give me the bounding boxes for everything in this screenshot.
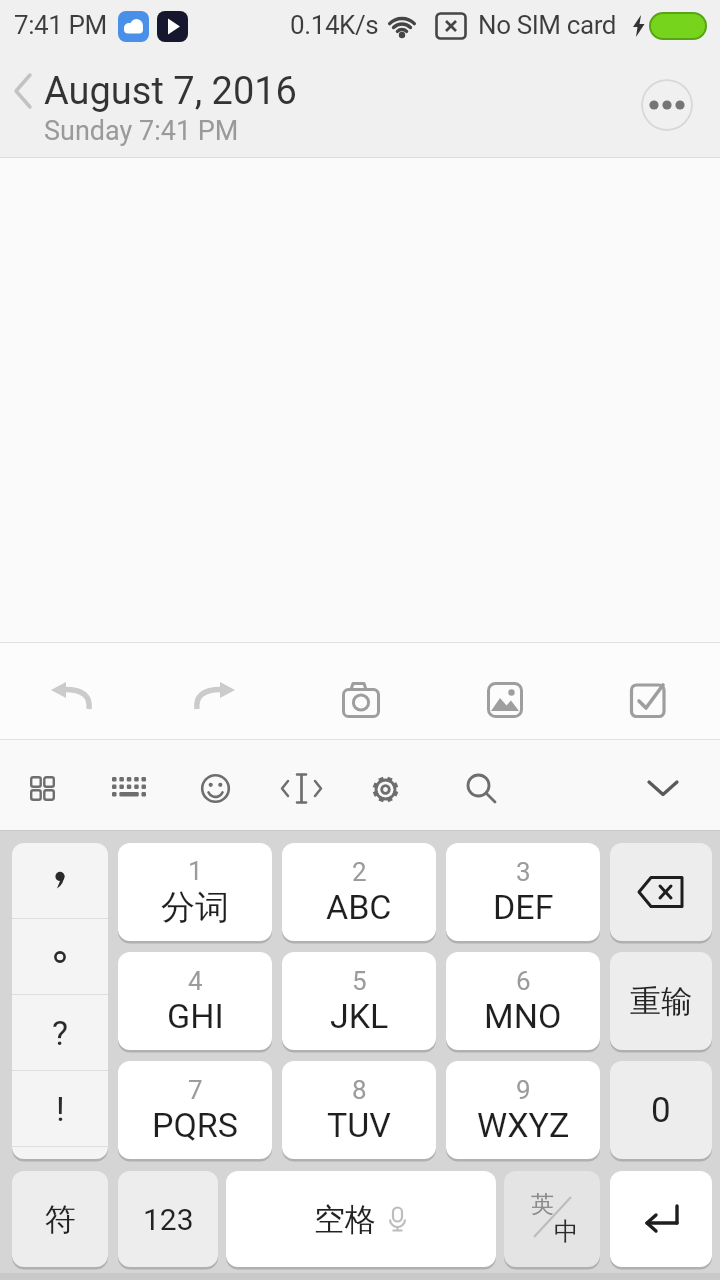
staticText: WXYZ (477, 1105, 570, 1145)
staticText: ABC (326, 887, 392, 927)
button[interactable] (610, 843, 712, 941)
button[interactable]: 9 (446, 1061, 600, 1159)
staticText: ! (56, 1089, 65, 1129)
button[interactable]: 1 (118, 843, 272, 941)
staticText: 0 (651, 1090, 671, 1131)
button[interactable]: 7 (118, 1061, 272, 1159)
button[interactable]: 0 (610, 1061, 712, 1159)
button[interactable] (12, 919, 108, 994)
staticText: 8 (352, 1075, 367, 1105)
button[interactable]: 6 (446, 952, 600, 1050)
staticText: 7 (188, 1075, 203, 1105)
staticText: JKL (330, 996, 389, 1036)
button[interactable] (641, 79, 693, 131)
button[interactable]: ? (12, 995, 108, 1070)
staticText: 空格 (314, 1200, 376, 1239)
staticText: 重输 (630, 982, 692, 1021)
staticText: 6 (516, 966, 531, 996)
staticText: 符 (45, 1200, 76, 1239)
button[interactable]: 3 (446, 843, 600, 941)
staticText: 2 (352, 857, 367, 887)
button[interactable]: 4 (118, 952, 272, 1050)
staticText: 中 (554, 1216, 579, 1247)
staticText: 英 (531, 1190, 554, 1219)
button[interactable] (634, 765, 690, 811)
button[interactable] (362, 763, 410, 811)
staticText: 5 (352, 966, 367, 996)
button[interactable] (334, 676, 388, 720)
staticText: 3 (516, 857, 531, 887)
button[interactable] (192, 763, 240, 811)
staticText: August 7, 2016 (44, 69, 297, 114)
button[interactable]: 2 (282, 843, 436, 941)
button[interactable] (610, 1171, 712, 1267)
staticText: TUV (327, 1105, 391, 1145)
staticText: Sunday 7:41 PM (44, 115, 239, 147)
button[interactable]: 重输 (610, 952, 712, 1050)
button[interactable] (42, 674, 100, 716)
button[interactable] (620, 676, 676, 720)
staticText: 7:41 PM (14, 10, 107, 40)
button[interactable]: 英 (504, 1171, 600, 1267)
staticText: PQRS (152, 1105, 238, 1145)
staticText: ? (52, 1013, 69, 1053)
button[interactable] (452, 763, 502, 811)
staticText: MNO (484, 996, 562, 1036)
staticText: 0.14K/s (290, 10, 379, 40)
staticText: GHI (167, 996, 224, 1036)
button[interactable] (4, 69, 44, 115)
button[interactable]: ! (12, 1071, 108, 1146)
button[interactable] (276, 763, 326, 811)
button[interactable] (104, 763, 154, 811)
button[interactable]: 符 (12, 1171, 108, 1267)
button[interactable] (12, 843, 108, 918)
staticText: 9 (516, 1075, 531, 1105)
staticText: 1 (188, 856, 203, 886)
button[interactable]: 5 (282, 952, 436, 1050)
staticText: DEF (493, 887, 554, 927)
staticText: 123 (143, 1202, 194, 1237)
staticText: 4 (188, 966, 203, 996)
staticText: No SIM card (478, 10, 617, 40)
staticText: 分词 (161, 886, 229, 929)
button[interactable] (478, 676, 532, 720)
button[interactable]: 空格 (226, 1171, 496, 1267)
button[interactable] (18, 763, 68, 811)
button[interactable] (186, 674, 244, 716)
button[interactable]: 8 (282, 1061, 436, 1159)
button[interactable]: 123 (118, 1171, 218, 1267)
